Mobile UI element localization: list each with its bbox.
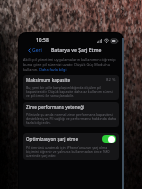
staticText: Bu, yeni bir pille karşılaştırıldığında … (26, 85, 116, 98)
staticText: Pil ömrünü uzatmak için iPhone'unuzun şa… (26, 145, 116, 158)
staticText: Akıllı pil yönetimi uygulamaların kullan… (23, 57, 119, 72)
staticText: Maksimum kapasite (26, 77, 71, 83)
staticText: Pilinizde şu anda normal zirve performan… (26, 112, 116, 125)
staticText: 82 % (106, 77, 116, 83)
staticText: Batarya ve Şarj Etme (51, 47, 102, 54)
button[interactable]: Optimizasyon şarj etme (23, 133, 119, 160)
button[interactable]: Optimize şarj açık (102, 135, 116, 143)
button[interactable]: Maksimum kapasite (23, 75, 119, 100)
button[interactable]: Zirve performans yeteneği (23, 102, 119, 127)
staticText: Optimizasyon şarj etme (26, 136, 79, 142)
button[interactable]: Geri (28, 47, 42, 54)
staticText: Zirve performans yeteneği (26, 104, 85, 110)
staticText: Geri (32, 47, 42, 54)
staticText: 10:58 (36, 37, 49, 44)
